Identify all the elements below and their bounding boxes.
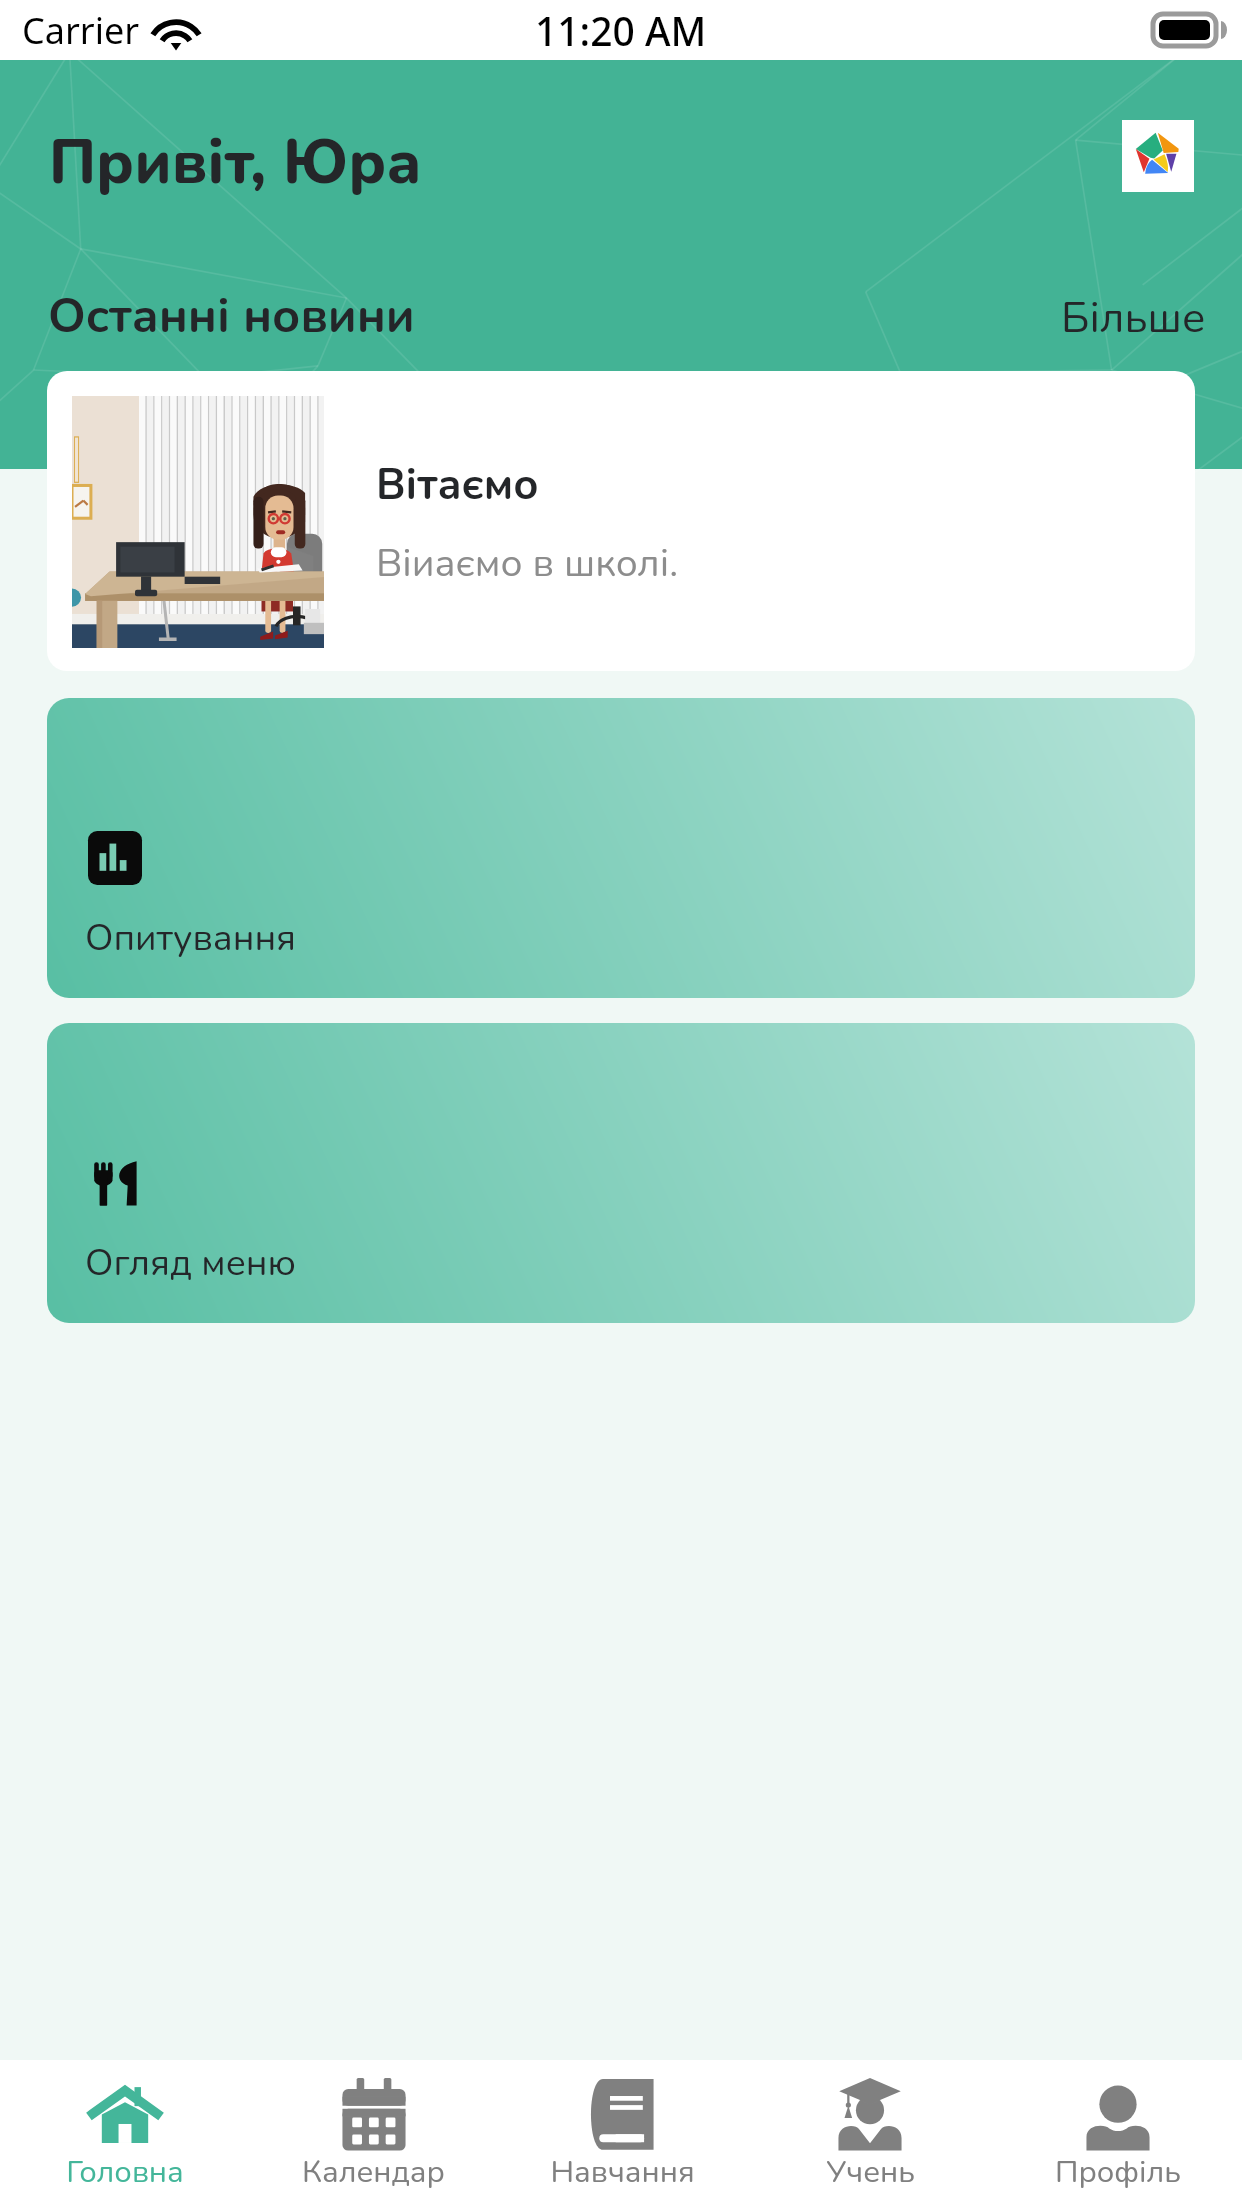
staticText: Профіль (1055, 2151, 1181, 2193)
button[interactable]: Головна (0, 2060, 249, 2208)
staticText: Опитування (85, 913, 297, 963)
staticText: Останні новини (48, 283, 415, 348)
staticText: Привіт, Юра (49, 121, 422, 204)
staticText: Головна (66, 2151, 184, 2193)
button[interactable]: Учень (746, 2060, 994, 2208)
staticText: Більше (1061, 289, 1206, 348)
staticText: Вітаємо (376, 456, 539, 515)
button[interactable]: Навчання (498, 2060, 746, 2208)
button[interactable]: Календар (249, 2060, 498, 2208)
staticText: Навчання (550, 2151, 695, 2193)
staticText: Учень (826, 2151, 915, 2193)
staticText: Огляд меню (85, 1238, 296, 1288)
button[interactable]: Опитування (47, 698, 1195, 998)
button[interactable]: Профіль (994, 2060, 1242, 2208)
button[interactable]: Вітаємо (47, 371, 1195, 671)
button[interactable]: Більше (1061, 289, 1206, 348)
button[interactable]: Огляд меню (47, 1023, 1195, 1323)
button[interactable]: App logo (1122, 120, 1194, 192)
staticText: Carrier (22, 6, 140, 55)
staticText: 11:20 AM (535, 4, 707, 57)
staticText: Віиаємо в школі. (376, 537, 679, 590)
staticText: Календар (302, 2151, 445, 2193)
